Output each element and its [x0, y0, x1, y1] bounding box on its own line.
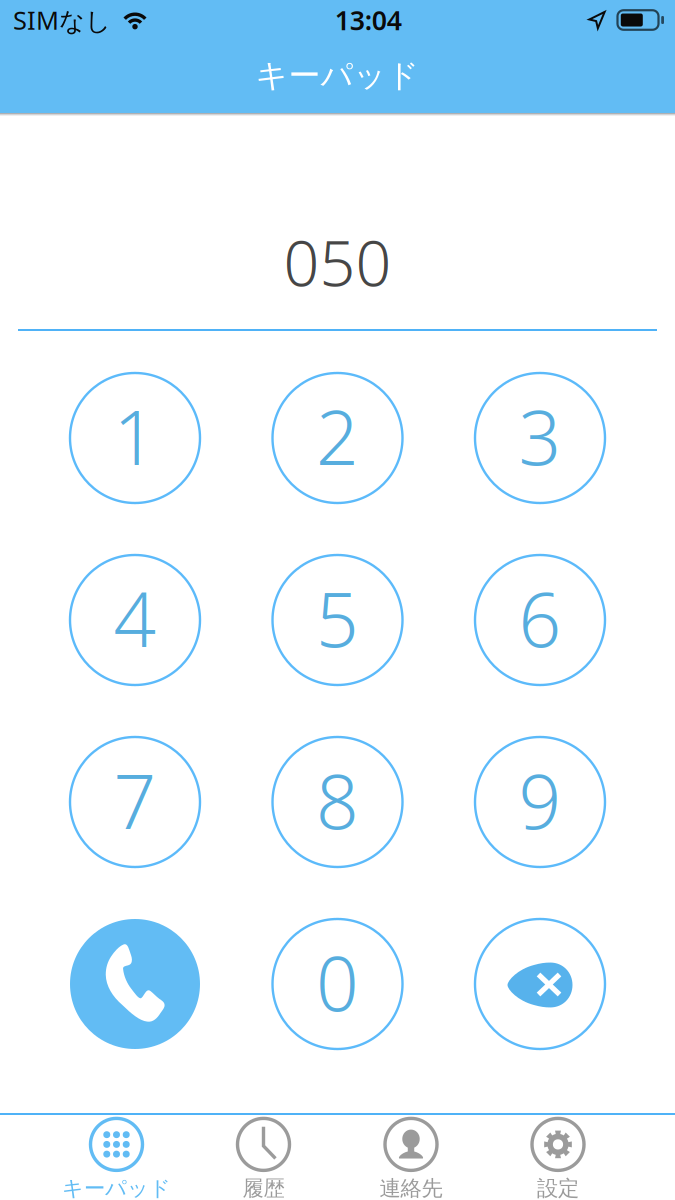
button[interactable]: 2	[272, 373, 402, 503]
button[interactable]: 削除	[475, 919, 605, 1049]
staticText: 0	[316, 932, 359, 1032]
staticText: キーパッド	[62, 1175, 171, 1200]
staticText: SIMなし	[13, 3, 111, 37]
button[interactable]: 発信	[70, 919, 200, 1049]
button[interactable]: キーパッド	[41, 1115, 191, 1200]
staticText: 6	[518, 568, 561, 668]
button[interactable]: 履歴	[188, 1115, 338, 1200]
button[interactable]: 4	[70, 555, 200, 685]
staticText: 1	[113, 386, 156, 486]
staticText: 連絡先	[379, 1175, 442, 1200]
button[interactable]: 9	[475, 737, 605, 867]
staticText: 設定	[537, 1175, 579, 1200]
staticText: 4	[113, 568, 156, 668]
staticText: 8	[316, 750, 359, 850]
button[interactable]: 0	[272, 919, 402, 1049]
staticText: 7	[113, 750, 156, 850]
staticText: キーパッド	[255, 56, 419, 95]
staticText: 5	[316, 568, 359, 668]
staticText: 2	[316, 386, 359, 486]
button[interactable]: 1	[70, 373, 200, 503]
button[interactable]: 設定	[483, 1115, 633, 1200]
staticText: 9	[518, 750, 561, 850]
button[interactable]: 5	[272, 555, 402, 685]
staticText: 13:04	[335, 2, 402, 38]
staticText: 履歴	[242, 1175, 284, 1200]
button[interactable]: 連絡先	[336, 1115, 486, 1200]
button[interactable]: 6	[475, 555, 605, 685]
button[interactable]: 7	[70, 737, 200, 867]
staticText: 3	[518, 386, 561, 486]
staticText: 050	[283, 220, 391, 304]
button[interactable]: 8	[272, 737, 402, 867]
button[interactable]: 3	[475, 373, 605, 503]
